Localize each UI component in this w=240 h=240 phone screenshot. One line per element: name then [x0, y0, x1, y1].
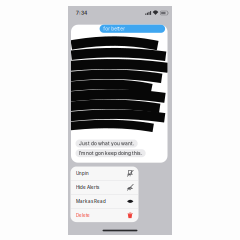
staticText: Just do what you want. [79, 141, 134, 146]
staticText: for better [103, 26, 125, 32]
staticText: Hide Alerts [76, 185, 99, 190]
button[interactable]: Delete [70, 208, 138, 222]
staticText: Unpin [76, 171, 89, 176]
staticText: 7:34 [76, 10, 87, 16]
staticText: Delete [76, 213, 90, 218]
button[interactable]: Mark as Read [70, 194, 138, 208]
button[interactable]: Hide Alerts [70, 180, 138, 194]
staticText: I'm not gon keep doing this. [79, 150, 142, 156]
staticText: Mark as Read [76, 199, 106, 204]
button[interactable]: Unpin [70, 166, 138, 180]
